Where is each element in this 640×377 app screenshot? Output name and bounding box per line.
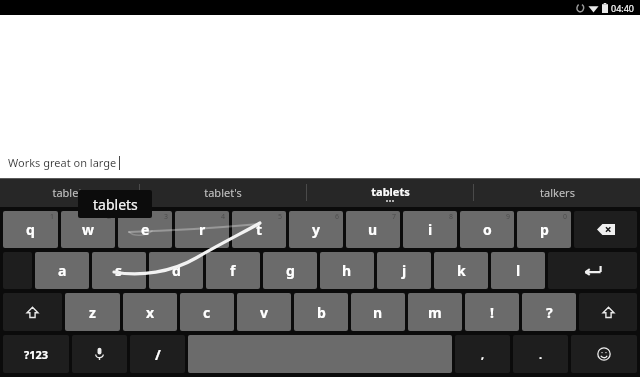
staticText: e [141, 220, 150, 239]
staticText: 3 [164, 212, 169, 222]
button[interactable]: 4 [175, 211, 229, 248]
button[interactable]: 8 [403, 211, 457, 248]
button[interactable]: , [455, 335, 510, 373]
staticText: 9 [506, 212, 511, 222]
staticText: 1 [50, 212, 55, 222]
staticText: tablet's [204, 185, 242, 200]
staticText: , [481, 347, 485, 362]
staticText: u [368, 220, 378, 239]
staticText: k [457, 261, 466, 280]
staticText: f [230, 261, 236, 280]
button[interactable]: ! [465, 293, 519, 331]
staticText: a [58, 261, 67, 280]
staticText: / [155, 345, 161, 364]
button[interactable]: tablets [0, 178, 139, 207]
staticText: 0 [563, 212, 568, 222]
staticText: z [89, 303, 96, 322]
staticText: y [312, 220, 320, 239]
button[interactable]: talkers [474, 178, 640, 207]
button[interactable]: g [263, 252, 317, 289]
button[interactable]: Enter [548, 252, 637, 289]
staticText: ?123 [24, 347, 49, 362]
button[interactable]: b [294, 293, 348, 331]
staticText: 5 [278, 212, 283, 222]
button[interactable]: 2 [61, 211, 115, 248]
staticText: v [260, 303, 268, 322]
button[interactable]: tablets [307, 178, 473, 207]
button[interactable]: Backspace [574, 211, 637, 248]
staticText: 6 [335, 212, 340, 222]
staticText: q [26, 220, 35, 239]
button[interactable]: n [351, 293, 405, 331]
staticText: 2 [107, 212, 112, 222]
staticText: ! [490, 303, 494, 322]
button[interactable]: 1 [3, 211, 58, 248]
button[interactable]: / [130, 335, 185, 373]
button[interactable]: 3 [118, 211, 172, 248]
staticText: tablets [52, 185, 88, 200]
button[interactable]: Emoji [571, 335, 637, 373]
button[interactable]: d [149, 252, 203, 289]
staticText: ? [546, 303, 553, 322]
staticText: Works great on large [8, 155, 117, 170]
button[interactable]: ? [522, 293, 576, 331]
button[interactable]: Shift [3, 293, 62, 331]
staticText: c [203, 303, 211, 322]
staticText: tablets [93, 195, 138, 214]
button[interactable]: tablet's [140, 178, 306, 207]
staticText: d [172, 261, 181, 280]
button[interactable]: a [35, 252, 89, 289]
button[interactable]: 6 [289, 211, 343, 248]
staticText: i [428, 220, 433, 239]
staticText: r [199, 220, 206, 239]
staticText: b [317, 303, 326, 322]
staticText: w [82, 220, 94, 239]
button[interactable]: x [123, 293, 177, 331]
staticText: . [539, 347, 543, 362]
button[interactable]: 5 [232, 211, 286, 248]
staticText: n [373, 303, 383, 322]
button[interactable]: Shift [579, 293, 637, 331]
staticText: h [342, 261, 352, 280]
button[interactable]: z [65, 293, 120, 331]
button[interactable]: l [491, 252, 545, 289]
staticText: 7 [392, 212, 397, 222]
staticText: talkers [540, 185, 575, 200]
staticText: 4 [221, 212, 226, 222]
button[interactable]: f [206, 252, 260, 289]
button[interactable]: s [92, 252, 146, 289]
button[interactable]: ?123 [3, 335, 69, 373]
staticText: p [540, 220, 549, 239]
staticText: x [146, 303, 155, 322]
staticText: j [402, 261, 407, 280]
button[interactable]: Voice input [72, 335, 127, 373]
staticText: l [516, 261, 521, 280]
button[interactable]: 7 [346, 211, 400, 248]
staticText: o [483, 220, 492, 239]
button[interactable]: c [180, 293, 234, 331]
button[interactable]: m [408, 293, 462, 331]
button[interactable]: 0 [517, 211, 571, 248]
staticText: t [256, 220, 263, 239]
button[interactable]: h [320, 252, 374, 289]
button[interactable]: 9 [460, 211, 514, 248]
button[interactable]: j [377, 252, 431, 289]
button[interactable]: v [237, 293, 291, 331]
staticText: m [428, 303, 442, 322]
staticText: tablets [371, 184, 410, 199]
staticText: 04:40 [611, 2, 635, 14]
button[interactable]: . [513, 335, 568, 373]
staticText: s [115, 261, 123, 280]
staticText: 8 [449, 212, 454, 222]
staticText: g [286, 261, 295, 280]
button[interactable]: k [434, 252, 488, 289]
